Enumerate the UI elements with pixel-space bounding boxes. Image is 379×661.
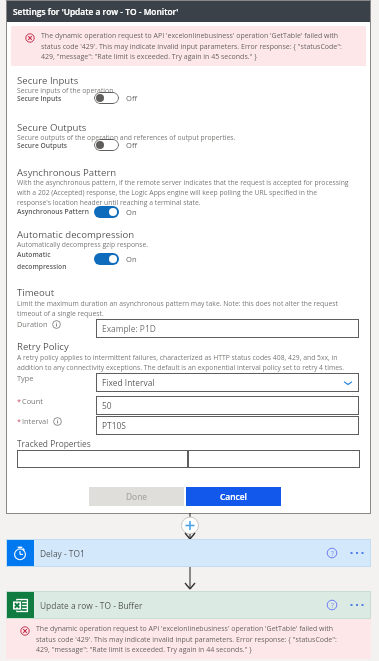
staticText: * bbox=[17, 396, 22, 406]
staticText: Secure Outputs bbox=[17, 141, 68, 150]
button[interactable]: Done bbox=[89, 487, 184, 506]
staticText: Count bbox=[22, 396, 43, 406]
staticText: Automatic decompression bbox=[17, 228, 135, 241]
staticText: Update a row - TO - Buffer bbox=[40, 600, 143, 611]
staticText: The dynamic operation request to API 'ex… bbox=[41, 31, 355, 61]
button[interactable]: PT10S bbox=[96, 416, 359, 435]
button[interactable]: Help bbox=[326, 599, 338, 611]
staticText: Done bbox=[126, 491, 147, 502]
staticText: Type bbox=[17, 373, 34, 383]
staticText: Secure inputs of the operation. bbox=[17, 86, 116, 95]
button[interactable]: More options bbox=[350, 547, 364, 559]
staticText: Automatically decompress gzip response. bbox=[17, 240, 149, 249]
button[interactable]: Asynchronous Pattern toggle bbox=[94, 206, 119, 218]
staticText: Interval bbox=[22, 416, 49, 426]
staticText: Duration bbox=[17, 319, 48, 329]
staticText: With the asynchronous pattern, if the re… bbox=[17, 178, 351, 207]
staticText: Delay - TO1 bbox=[40, 548, 85, 559]
staticText: Asynchronous Pattern bbox=[17, 166, 117, 179]
staticText: Timeout bbox=[17, 286, 55, 299]
staticText: Tracked Properties bbox=[17, 438, 91, 449]
staticText: Example: P1D bbox=[102, 323, 156, 334]
staticText: Asynchronous Pattern bbox=[17, 207, 89, 216]
button[interactable]: Fixed Interval bbox=[96, 373, 359, 392]
staticText: The dynamic operation request to API 'ex… bbox=[36, 624, 350, 654]
button[interactable]: Update a row - TO - Buffer bbox=[6, 591, 371, 619]
button[interactable] bbox=[17, 450, 188, 468]
staticText: Off bbox=[126, 140, 138, 150]
staticText: ? bbox=[331, 601, 334, 610]
staticText: On bbox=[126, 254, 137, 264]
button[interactable]: Settings for 'Update a row - TO - Monito… bbox=[7, 1, 370, 22]
staticText: On bbox=[126, 207, 137, 217]
staticText: * bbox=[17, 416, 22, 426]
staticText: Off bbox=[126, 93, 138, 103]
staticText: Secure Inputs bbox=[17, 74, 79, 87]
staticText: 50 bbox=[102, 400, 112, 411]
staticText: Cancel bbox=[220, 491, 247, 502]
staticText: Fixed Interval bbox=[102, 377, 155, 388]
button[interactable]: Secure Outputs toggle bbox=[94, 139, 119, 151]
staticText: Retry Policy bbox=[17, 340, 69, 353]
staticText: PT10S bbox=[102, 420, 126, 431]
staticText: A retry policy applies to intermittent f… bbox=[17, 353, 351, 372]
button[interactable]: Automatic decompression toggle bbox=[94, 253, 119, 265]
button[interactable]: 50 bbox=[96, 396, 359, 415]
staticText: Settings for 'Update a row - TO - Monito… bbox=[13, 6, 179, 17]
staticText: Secure outputs of the operation and refe… bbox=[17, 133, 236, 142]
staticText: Automatic decompression bbox=[17, 250, 79, 271]
button[interactable]: Secure Inputs toggle bbox=[94, 92, 119, 104]
staticText: Limit the maximum duration an asynchrono… bbox=[17, 299, 351, 318]
button[interactable]: Cancel bbox=[186, 487, 281, 506]
button[interactable]: More options bbox=[350, 599, 364, 611]
button[interactable]: Delay - TO1 bbox=[6, 539, 371, 567]
button[interactable]: Example: P1D bbox=[96, 319, 359, 338]
staticText: Secure Outputs bbox=[17, 121, 87, 134]
staticText: ? bbox=[331, 549, 334, 558]
button[interactable]: Help bbox=[326, 547, 338, 559]
staticText: Secure Inputs bbox=[17, 94, 62, 103]
button[interactable] bbox=[188, 450, 360, 468]
